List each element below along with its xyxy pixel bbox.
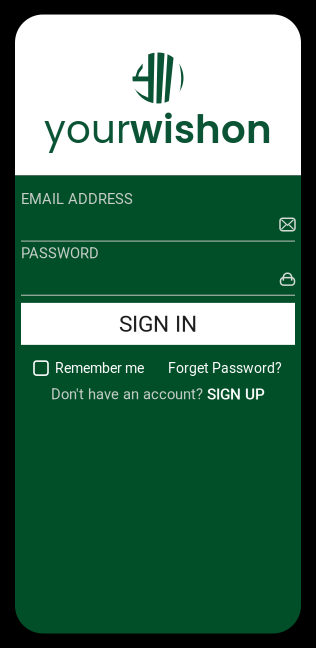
staticText: your xyxy=(44,102,130,157)
staticText: Remember me xyxy=(55,360,144,376)
staticText: Forget Password? xyxy=(168,360,282,376)
staticText: EMAIL ADDRESS xyxy=(21,190,133,208)
staticText: SIGN IN xyxy=(119,311,197,337)
staticText: wishon xyxy=(130,102,272,157)
staticText: SIGN UP xyxy=(207,385,265,403)
button[interactable]: SIGN IN xyxy=(21,303,295,345)
button[interactable]: Forget Password? xyxy=(168,360,282,376)
staticText: PASSWORD xyxy=(21,245,99,262)
staticText: Don't have an account? xyxy=(51,386,203,403)
button[interactable]: SIGN UP xyxy=(207,385,265,403)
button[interactable]: Remember me xyxy=(34,360,144,376)
